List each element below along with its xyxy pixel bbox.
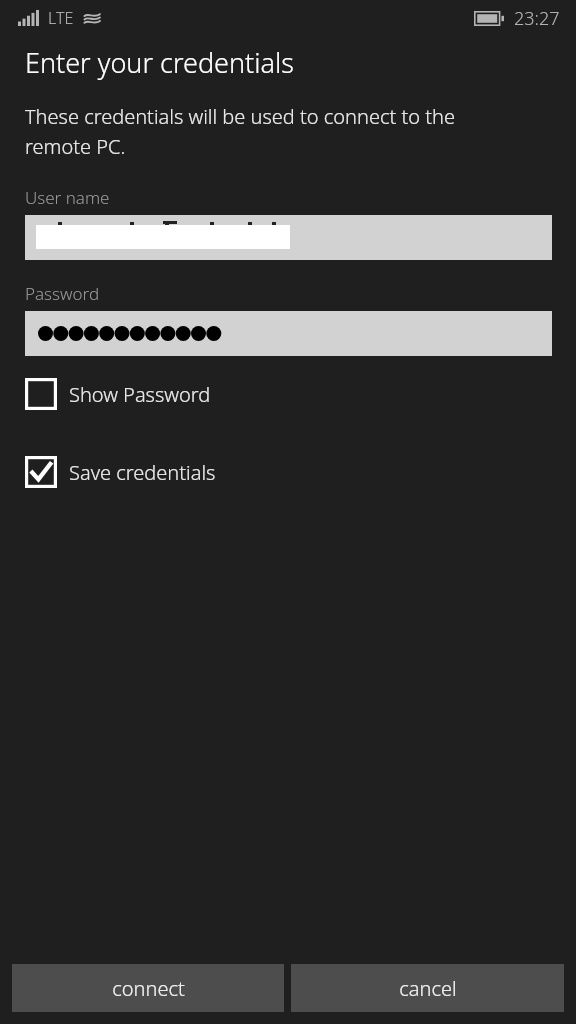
button[interactable]: Show Password <box>25 378 552 410</box>
button[interactable] <box>25 311 552 356</box>
staticText: User name <box>25 186 110 209</box>
staticText: connect <box>112 975 185 1002</box>
staticText: cancel <box>399 975 457 1002</box>
button[interactable] <box>25 215 552 260</box>
staticText: Save credentials <box>69 459 216 486</box>
button[interactable]: cancel <box>291 964 564 1012</box>
staticText: Enter your credentials <box>25 44 294 81</box>
staticText: 23:27 <box>514 6 560 31</box>
staticText: These credentials will be used to connec… <box>25 103 455 160</box>
staticText: Show Password <box>69 381 211 408</box>
button[interactable]: Save credentials <box>25 456 552 488</box>
staticText: Password <box>25 282 100 305</box>
button[interactable]: connect <box>12 964 284 1012</box>
staticText: LTE <box>48 7 74 29</box>
